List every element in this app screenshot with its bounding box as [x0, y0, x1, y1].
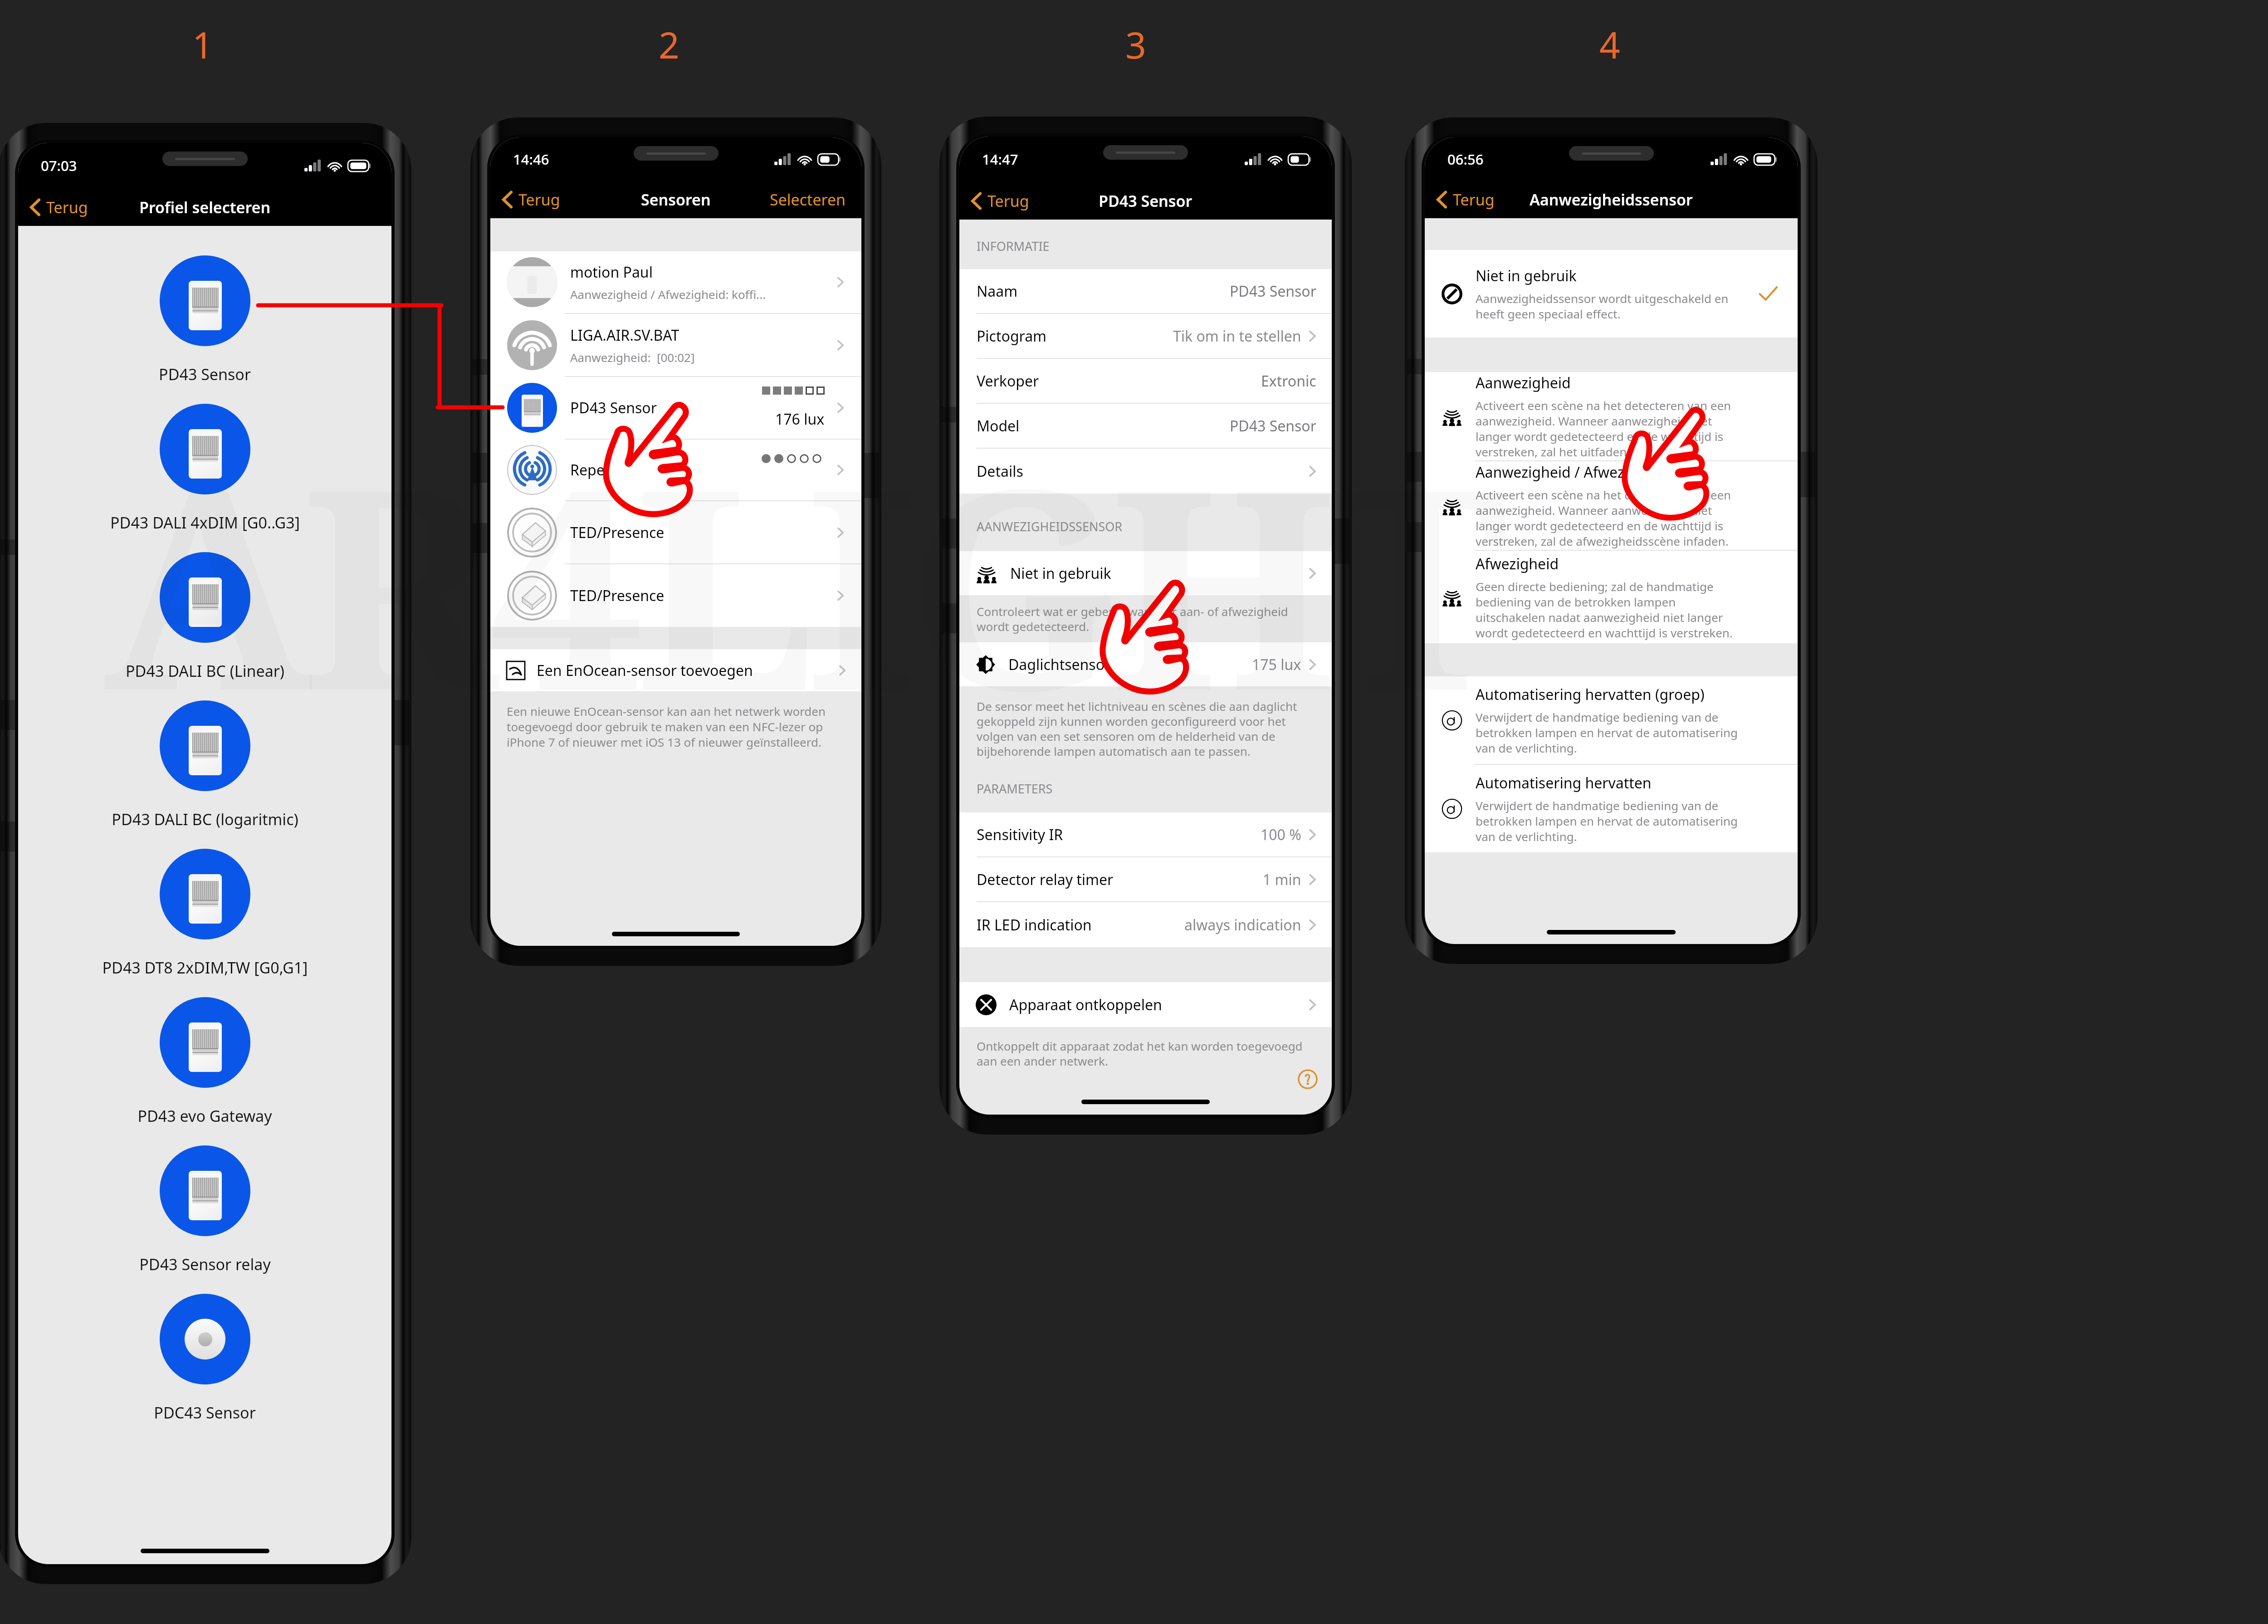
button[interactable]: Selecteren: [754, 185, 861, 215]
button[interactable]: [160, 700, 250, 791]
button[interactable]: Daglichtsensor: [959, 642, 1332, 686]
staticText: PD43 Sensor: [1230, 416, 1316, 436]
staticText: PD43 evo Gateway: [137, 1105, 272, 1126]
button[interactable]: [160, 849, 250, 939]
button[interactable]: Terug: [28, 194, 90, 220]
staticText: 07:03: [41, 156, 77, 175]
staticText: Aanwezigheid: [00:02]: [570, 349, 695, 365]
staticText: Tik om in te stellen: [1173, 326, 1301, 346]
staticText: Extronic: [1261, 371, 1316, 391]
button[interactable]: TED/Presence: [490, 564, 861, 627]
staticText: Aanwezigheidssensor wordt uitgeschakeld …: [1476, 290, 1739, 322]
staticText: PD43 Sensor: [1099, 191, 1193, 211]
other: Tap here: [601, 401, 690, 514]
button[interactable]: Verkoper: [959, 359, 1332, 403]
staticText: Automatisering hervatten: [1476, 773, 1652, 793]
button[interactable]: [160, 997, 250, 1088]
staticText: Sensoren: [641, 189, 711, 210]
staticText: TED/Presence: [570, 586, 665, 606]
staticText: Niet in gebruik: [1010, 563, 1111, 583]
button[interactable]: Niet in gebruik: [1425, 250, 1798, 338]
button[interactable]: Automatisering hervatten: [1425, 765, 1798, 852]
staticText: Niet in gebruik: [1476, 266, 1577, 286]
button[interactable]: [160, 404, 250, 494]
staticText: Terug: [518, 189, 560, 210]
button[interactable]: motion Paul: [490, 251, 861, 313]
staticText: Een EnOcean-sensor toevoegen: [537, 660, 753, 680]
staticText: motion Paul: [570, 262, 653, 282]
staticText: Terug: [987, 191, 1029, 211]
staticText: PD43 DT8 2xDIM,TW [G0,G1]: [102, 957, 308, 978]
staticText: 1 min: [1263, 870, 1301, 890]
button[interactable]: LIGA.AIR.SV.BAT: [490, 314, 861, 376]
staticText: Details: [977, 461, 1023, 481]
button[interactable]: PD43 Sensor: [490, 377, 861, 439]
button[interactable]: Een EnOcean-sensor toevoegen: [490, 649, 861, 691]
staticText: AANWEZIGHEIDSSENSOR: [977, 518, 1123, 535]
staticText: Repe: [570, 460, 605, 480]
button[interactable]: [160, 1145, 250, 1236]
button[interactable]: Afwezigheid: [1425, 551, 1798, 643]
button[interactable]: Details: [959, 449, 1332, 494]
staticText: Apparaat ontkoppelen: [1009, 995, 1162, 1015]
staticText: 14:46: [513, 150, 549, 169]
staticText: Sensitivity IR: [977, 825, 1063, 845]
button[interactable]: Niet in gebruik: [959, 551, 1332, 595]
staticText: always indication: [1184, 915, 1301, 935]
button[interactable]: TED/Presence: [490, 501, 861, 563]
button[interactable]: Terug: [1435, 186, 1496, 213]
staticText: INFORMATIE: [977, 238, 1050, 254]
other: Tap here: [1098, 579, 1186, 691]
staticText: Verwijdert de handmatige bediening van d…: [1476, 709, 1739, 756]
staticText: Terug: [46, 197, 88, 218]
staticText: PD43 Sensor relay: [139, 1254, 271, 1275]
staticText: PD43 Sensor: [1230, 281, 1316, 301]
staticText: Een nieuwe EnOcean-sensor kan aan het ne…: [507, 703, 846, 750]
button[interactable]: [160, 552, 250, 643]
staticText: PD43 Sensor: [570, 398, 657, 418]
button[interactable]: Model: [959, 404, 1332, 448]
staticText: 1: [192, 20, 213, 69]
button[interactable]: Terug: [500, 186, 562, 213]
staticText: Model: [977, 416, 1020, 436]
button[interactable]: Naam: [959, 269, 1332, 313]
staticText: Verwijdert de handmatige bediening van d…: [1476, 797, 1739, 844]
button[interactable]: Automatisering hervatten (groep): [1425, 676, 1798, 764]
button[interactable]: Terug: [969, 188, 1031, 214]
staticText: PARAMETERS: [977, 780, 1053, 797]
other: Help: [1297, 1069, 1318, 1089]
button[interactable]: Detector relay timer: [959, 857, 1332, 901]
staticText: De sensor meet het lichtniveau en scènes…: [977, 698, 1315, 759]
staticText: 175 lux: [1252, 655, 1301, 675]
staticText: Automatisering hervatten (groep): [1476, 685, 1705, 704]
staticText: PD43 DALI BC (logaritmic): [112, 809, 298, 830]
staticText: 3: [1125, 20, 1146, 69]
staticText: 06:56: [1447, 150, 1484, 169]
button[interactable]: Apparaat ontkoppelen: [959, 982, 1332, 1027]
staticText: Detector relay timer: [977, 870, 1114, 890]
staticText: Naam: [977, 281, 1018, 301]
button[interactable]: Repe: [490, 440, 861, 500]
staticText: Profiel selecteren: [139, 197, 271, 218]
staticText: LIGA.AIR.SV.BAT: [570, 325, 679, 345]
button[interactable]: Sensitivity IR: [959, 812, 1332, 856]
staticText: Daglichtsensor: [1008, 655, 1111, 675]
staticText: 4: [1599, 20, 1620, 69]
button[interactable]: Aanwezigheid: [1425, 372, 1798, 460]
staticText: PDC43 Sensor: [154, 1402, 256, 1423]
staticText: Aanwezigheid / Afwezigheid: [1476, 462, 1667, 482]
staticText: 14:47: [982, 150, 1018, 169]
staticText: Aanwezigheid: [1476, 373, 1571, 393]
staticText: PD43 DALI BC (Linear): [126, 660, 284, 681]
staticText: Aanwezigheid / Afwezigheid: koffi...: [570, 286, 766, 302]
staticText: Terug: [1453, 189, 1495, 210]
staticText: PD43 DALI 4xDIM [G0..G3]: [110, 512, 300, 533]
button[interactable]: Aanwezigheid / Afwezigheid: [1425, 461, 1798, 550]
button[interactable]: Pictogram: [959, 314, 1332, 358]
button[interactable]: IR LED indication: [959, 902, 1332, 947]
staticText: 100 %: [1261, 825, 1301, 845]
other: Tap here: [1620, 406, 1706, 518]
button[interactable]: [160, 255, 250, 346]
staticText: Controleert wat er gebeurt wanneer aan- …: [977, 603, 1314, 635]
button[interactable]: [160, 1294, 250, 1384]
